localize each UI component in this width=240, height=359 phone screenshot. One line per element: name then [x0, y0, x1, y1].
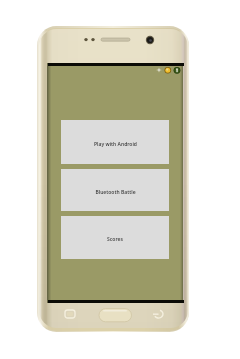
- button[interactable]: Home: [99, 308, 132, 322]
- staticText: Scores: [107, 236, 123, 243]
- staticText: Play with Android: [94, 141, 137, 148]
- button[interactable]: Scores: [61, 216, 169, 259]
- staticText: Bluetooth Battle: [95, 189, 136, 196]
- button[interactable]: Bluetooth Battle: [61, 169, 169, 211]
- button[interactable]: Recent apps: [59, 304, 81, 324]
- button[interactable]: Play with Android: [61, 120, 169, 164]
- button[interactable]: Back: [148, 304, 170, 324]
